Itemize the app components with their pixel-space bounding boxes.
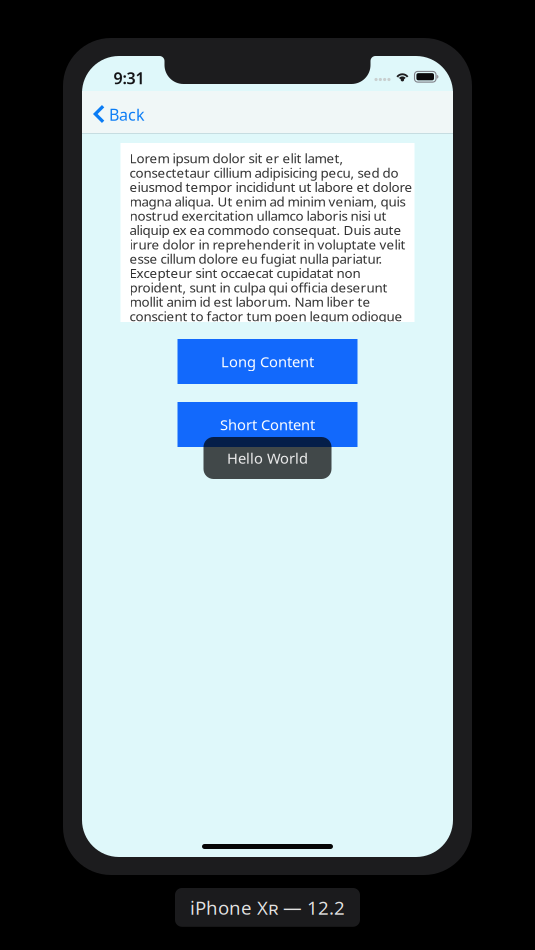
staticText: 9:31 (113, 67, 144, 89)
button[interactable]: Long Content (177, 339, 357, 384)
staticText: Short Content (220, 415, 315, 434)
button[interactable]: iPhone Xʀ — 12.2 (175, 888, 360, 927)
button[interactable]: Short Content (177, 402, 357, 447)
staticText: Lorem ipsum dolor sit er elit lamet, con… (129, 151, 412, 337)
staticText: Hello World (227, 448, 308, 468)
staticText: Back (109, 104, 145, 125)
staticText: iPhone Xʀ — 12.2 (190, 895, 345, 920)
staticText: Long Content (221, 352, 314, 371)
button[interactable]: Back (82, 91, 157, 133)
